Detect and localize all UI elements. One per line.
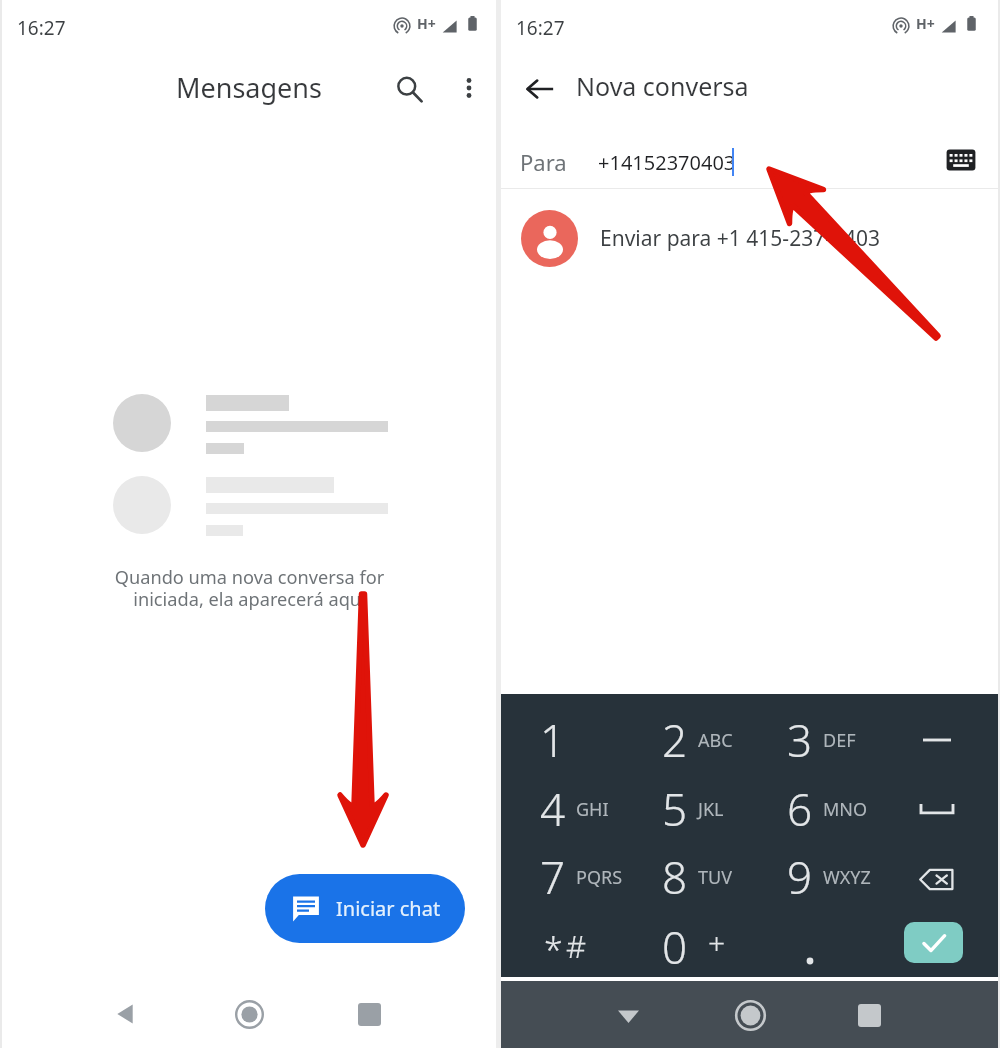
- staticText: Para: [520, 147, 567, 177]
- staticText: 6: [787, 779, 813, 839]
- button[interactable]: Done: [874, 913, 999, 977]
- staticText: #: [566, 925, 587, 967]
- button[interactable]: [499, 774, 624, 844]
- staticText: 8: [662, 847, 688, 907]
- staticText: Enviar para +1 415-237-0403: [600, 224, 880, 253]
- staticText: +14152370403: [598, 149, 736, 176]
- button[interactable]: [749, 912, 874, 982]
- button[interactable]: Recents: [345, 990, 393, 1038]
- button[interactable]: [749, 842, 874, 912]
- button[interactable]: [499, 912, 624, 982]
- button[interactable]: Backspace: [874, 844, 999, 914]
- staticText: Mensagens: [176, 69, 322, 106]
- button[interactable]: [499, 842, 624, 912]
- button[interactable]: Keyboard: [937, 136, 985, 184]
- staticText: Quando uma nova conversa for iniciada, e…: [36, 565, 463, 612]
- button[interactable]: [624, 912, 749, 982]
- button[interactable]: Hide keyboard: [604, 991, 652, 1039]
- staticText: JKL: [698, 797, 724, 822]
- staticText: 1: [540, 710, 566, 770]
- staticText: +: [708, 922, 726, 963]
- staticText: H+: [417, 14, 436, 33]
- staticText: 3: [787, 710, 813, 770]
- button[interactable]: [624, 705, 749, 775]
- staticText: WXYZ: [823, 865, 871, 890]
- staticText: ABC: [698, 728, 733, 753]
- button[interactable]: More options: [447, 66, 491, 110]
- button[interactable]: Enviar para +1 415-237-0403: [499, 196, 1000, 280]
- button[interactable]: [624, 842, 749, 912]
- staticText: Nova conversa: [576, 69, 749, 103]
- button[interactable]: Search: [386, 66, 432, 112]
- button[interactable]: Back: [517, 66, 563, 112]
- button[interactable]: [749, 705, 874, 775]
- staticText: 2: [662, 710, 688, 770]
- button[interactable]: Iniciar chat: [265, 874, 465, 943]
- button[interactable]: Dash: [874, 705, 999, 775]
- staticText: 9: [787, 847, 813, 907]
- button[interactable]: Recents: [845, 991, 893, 1039]
- staticText: PQRS: [576, 865, 623, 890]
- button[interactable]: [624, 774, 749, 844]
- staticText: GHI: [576, 797, 609, 822]
- button[interactable]: [499, 705, 624, 775]
- staticText: TUV: [698, 865, 732, 890]
- staticText: 7: [540, 847, 566, 907]
- button[interactable]: Space: [874, 775, 999, 845]
- button[interactable]: Home: [225, 990, 273, 1038]
- staticText: DEF: [823, 728, 856, 753]
- staticText: Iniciar chat: [336, 895, 441, 922]
- button[interactable]: Back: [101, 990, 149, 1038]
- button[interactable]: [749, 774, 874, 844]
- staticText: 16:27: [17, 15, 66, 41]
- staticText: *: [544, 927, 563, 973]
- staticText: 5: [662, 779, 688, 839]
- button[interactable]: Home: [726, 991, 774, 1039]
- staticText: MNO: [823, 797, 868, 822]
- staticText: H+: [916, 14, 935, 33]
- staticText: 16:27: [516, 15, 565, 41]
- staticText: 0: [662, 917, 688, 977]
- staticText: 4: [540, 779, 566, 839]
